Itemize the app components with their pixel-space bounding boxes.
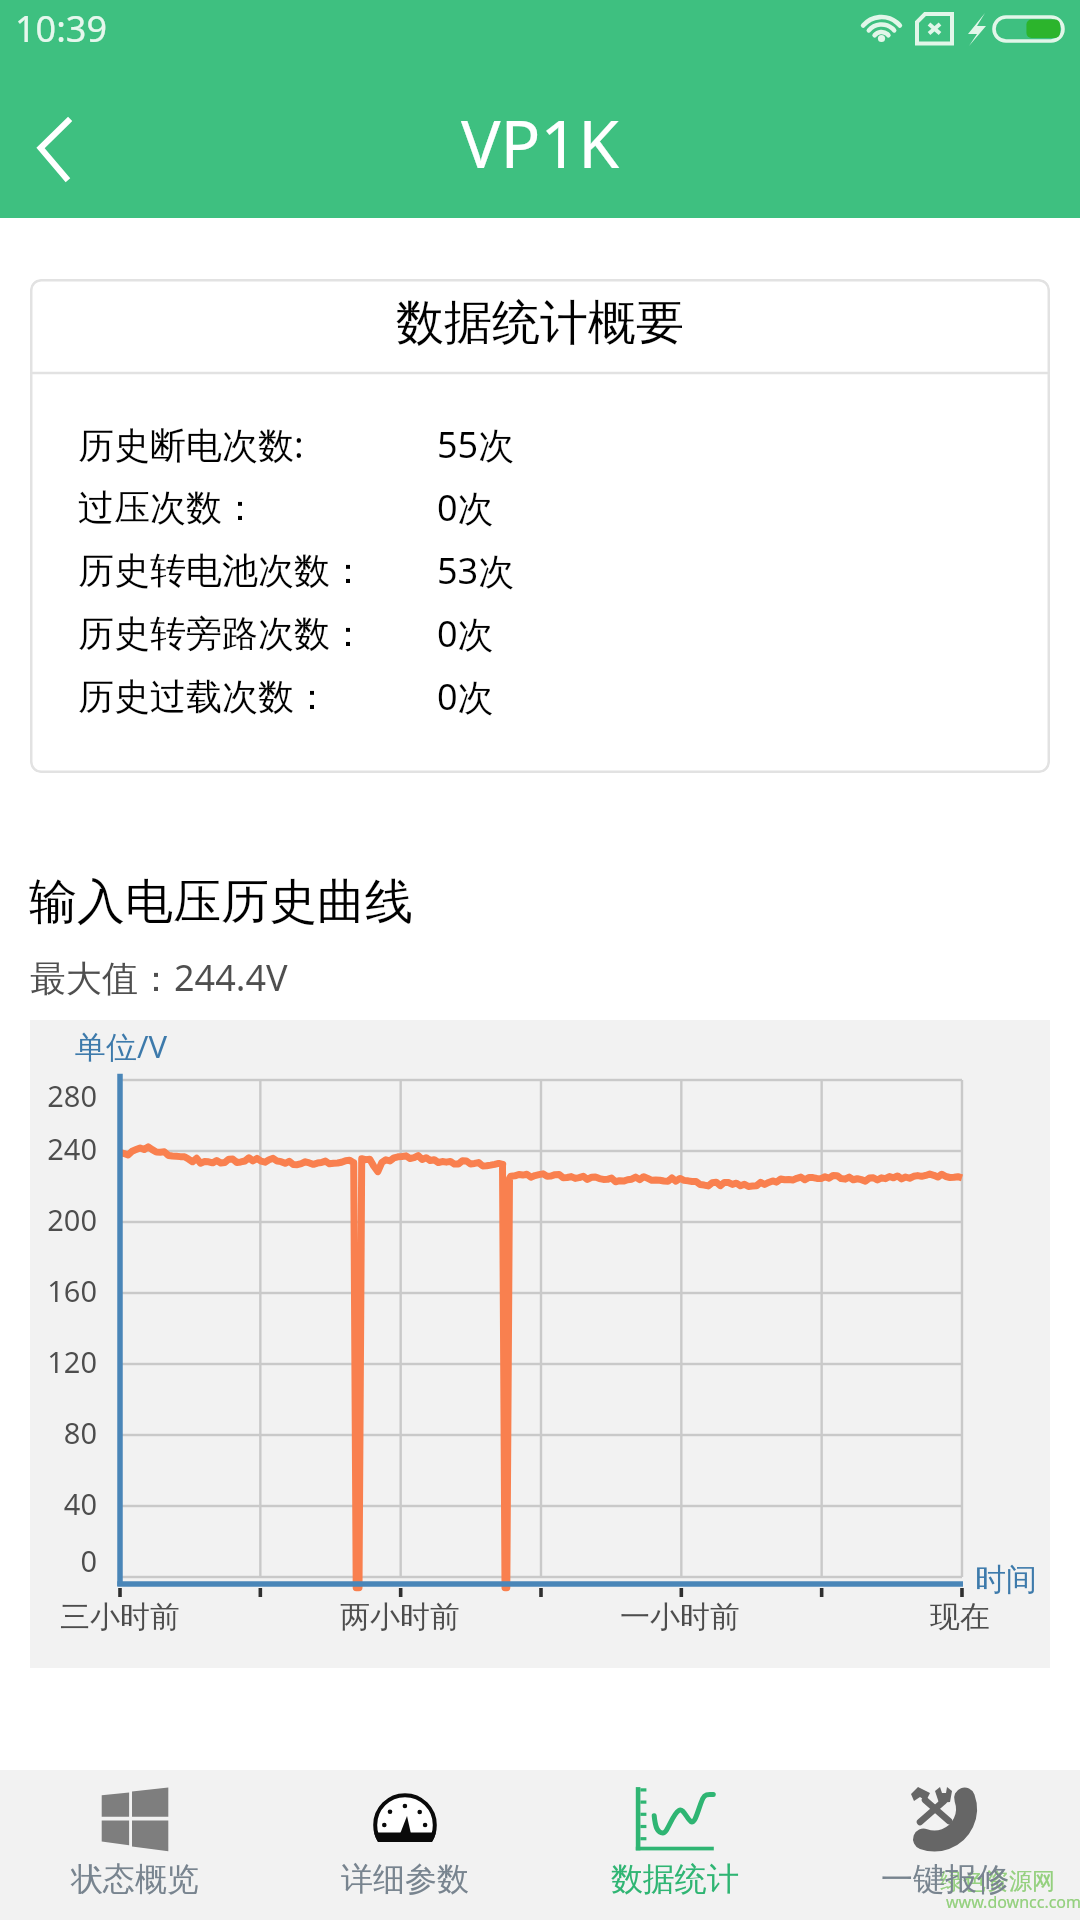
staticText: 280 (30, 1076, 97, 1115)
staticText: 三小时前 (0, 1598, 240, 1636)
staticText: 单位/V (75, 1025, 168, 1067)
staticText: 一键报修 (881, 1859, 1009, 1899)
button[interactable]: 绿色资源网 (810, 1770, 1080, 1920)
staticText: 历史过载次数： (78, 674, 330, 719)
staticText: 状态概览 (71, 1859, 199, 1899)
staticText: 0 (30, 1541, 97, 1580)
button[interactable]: Back (0, 84, 110, 194)
staticText: 历史断电次数: (78, 420, 304, 469)
staticText: 240 (30, 1129, 97, 1168)
staticText: 现在 (840, 1598, 1080, 1636)
button[interactable]: 状态概览 (0, 1770, 270, 1920)
button[interactable]: 详细参数 (270, 1770, 540, 1920)
staticText: 200 (30, 1200, 97, 1239)
staticText: 120 (30, 1342, 97, 1381)
staticText: 时间 (975, 1560, 1037, 1599)
staticText: 0次 (437, 672, 494, 721)
staticText: 55次 (437, 420, 515, 469)
staticText: 0次 (437, 483, 494, 532)
staticText: www.downcc.com (946, 1891, 1080, 1913)
staticText: 一小时前 (560, 1598, 800, 1636)
staticText: 历史转旁路次数： (78, 611, 366, 656)
staticText: 输入电压历史曲线 (29, 872, 413, 932)
staticText: 数据统计概要 (396, 293, 684, 353)
staticText: 两小时前 (280, 1598, 520, 1636)
staticText: 详细参数 (341, 1859, 469, 1899)
staticText: 历史转电池次数： (78, 548, 366, 593)
staticText: 40 (30, 1484, 97, 1523)
staticText: 最大值：244.4V (30, 953, 288, 1002)
staticText: 数据统计 (611, 1859, 739, 1899)
staticText: 0次 (437, 609, 494, 658)
staticText: 53次 (437, 546, 515, 595)
staticText: 80 (30, 1413, 97, 1452)
staticText: 过压次数： (78, 485, 258, 530)
staticText: 10:39 (15, 4, 108, 53)
staticText: VP1K (461, 97, 620, 187)
staticText: 绿色资源网 (940, 1867, 1055, 1896)
button[interactable]: 数据统计 (540, 1770, 810, 1920)
staticText: 160 (30, 1271, 97, 1310)
